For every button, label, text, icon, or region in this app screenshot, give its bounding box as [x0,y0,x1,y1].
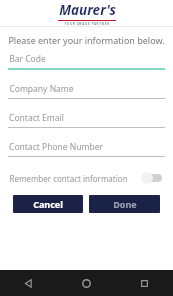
staticText: Company Name [9,83,74,95]
staticText: Cancel [33,198,63,210]
staticText: Contact Phone Number [9,141,103,153]
button[interactable]: Done [89,195,160,213]
button[interactable]: Cancel [13,195,83,213]
staticText: Done [113,198,137,210]
button[interactable]: Remember contact information toggle [140,171,164,185]
button[interactable]: Recent apps [115,270,173,296]
staticText: Maurer's [59,1,116,19]
staticText: Contact Email [9,112,64,124]
button[interactable]: Home [57,270,115,296]
staticText: Remember contact information [9,173,128,184]
button[interactable]: Company Name [8,83,165,99]
button[interactable]: Remember contact information [0,169,173,187]
staticText: Please enter your information below. [8,34,165,46]
button[interactable]: Bar Code [8,53,165,70]
button[interactable]: Back [0,270,57,296]
staticText: Bar Code [9,53,46,65]
button[interactable]: Contact Email [8,112,165,128]
button[interactable]: Contact Phone Number [8,141,165,157]
staticText: YOUR IMAGE PARTNER [64,22,110,26]
